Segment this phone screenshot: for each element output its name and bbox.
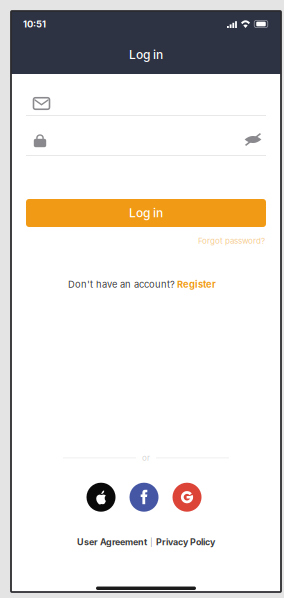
staticText: Register (177, 279, 216, 290)
staticText: Log in (129, 206, 163, 220)
button[interactable]: Show password (240, 125, 266, 146)
button[interactable]: Register (175, 276, 218, 293)
staticText: User Agreement (77, 537, 147, 547)
button[interactable]: Forgot password? (198, 233, 265, 249)
button[interactable]: Email address (11, 74, 281, 115)
button[interactable]: Sign in with Apple (86, 483, 115, 512)
button[interactable]: Sign in with Facebook (129, 483, 158, 512)
staticText: Don't have an account? (68, 279, 175, 290)
staticText: | (150, 537, 153, 547)
staticText: or (142, 453, 150, 463)
button[interactable]: User Agreement (77, 537, 147, 547)
staticText: Forgot password? (198, 236, 265, 246)
staticText: Privacy Policy (156, 537, 215, 547)
button[interactable]: Log in (26, 199, 266, 227)
button[interactable]: Sign in with Google (172, 483, 201, 512)
staticText: Log in (129, 47, 163, 62)
button[interactable]: Privacy Policy (156, 537, 215, 547)
staticText: 10:51 (23, 18, 46, 30)
